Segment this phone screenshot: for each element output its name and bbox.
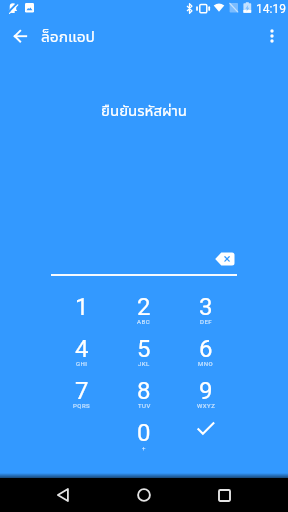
button[interactable] bbox=[207, 478, 241, 512]
button[interactable]: 6 bbox=[175, 328, 237, 370]
staticText: ล็อกแอป bbox=[41, 25, 95, 46]
button[interactable] bbox=[46, 478, 80, 512]
staticText: JKL bbox=[138, 360, 150, 367]
button[interactable] bbox=[258, 20, 286, 52]
button[interactable]: 5 bbox=[113, 328, 175, 370]
staticText: 0 bbox=[137, 419, 151, 447]
button[interactable]: 7 bbox=[51, 370, 113, 412]
staticText: ABC bbox=[137, 318, 151, 325]
staticText: DEF bbox=[200, 318, 213, 325]
staticText: WXYZ bbox=[197, 402, 216, 409]
button[interactable]: 2 bbox=[113, 286, 175, 328]
button[interactable] bbox=[4, 20, 36, 52]
button[interactable] bbox=[127, 478, 161, 512]
staticText: 14:19 bbox=[256, 2, 286, 16]
staticText: 6 bbox=[199, 335, 213, 363]
staticText: 3 bbox=[199, 293, 213, 321]
staticText: ยืนยันรหัสผ่าน bbox=[0, 100, 288, 126]
staticText: PQRS bbox=[73, 402, 91, 409]
button[interactable] bbox=[213, 250, 237, 268]
staticText: MNO bbox=[198, 360, 214, 367]
staticText: 1 bbox=[75, 293, 89, 321]
button[interactable]: 1 bbox=[51, 286, 113, 328]
button[interactable] bbox=[175, 412, 237, 454]
button[interactable]: 0 bbox=[113, 412, 175, 454]
staticText: 5 bbox=[137, 335, 151, 363]
staticText: TUV bbox=[138, 402, 151, 409]
staticText: 2 bbox=[137, 293, 151, 321]
staticText: 7 bbox=[75, 377, 89, 405]
staticText: 9 bbox=[199, 377, 213, 405]
staticText: GHI bbox=[76, 360, 88, 367]
staticText: + bbox=[142, 444, 146, 451]
button[interactable]: 3 bbox=[175, 286, 237, 328]
button[interactable]: 4 bbox=[51, 328, 113, 370]
button[interactable]: 8 bbox=[113, 370, 175, 412]
staticText: 4 bbox=[75, 335, 89, 363]
staticText: 8 bbox=[137, 377, 151, 405]
button[interactable]: 9 bbox=[175, 370, 237, 412]
